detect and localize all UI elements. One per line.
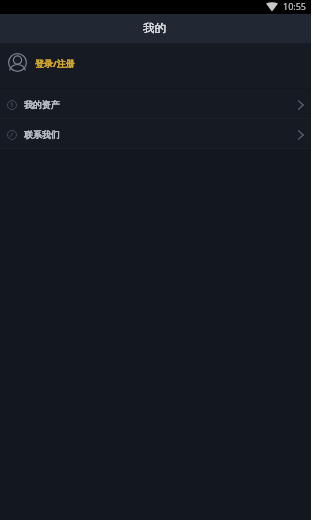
other: Contact us: [7, 130, 17, 140]
staticText: 我的资产: [24, 99, 60, 110]
staticText: 我的: [143, 21, 166, 35]
staticText: 10:55: [283, 0, 307, 12]
staticText: 我的资产: [24, 99, 60, 110]
staticText: 联系我们: [24, 129, 60, 140]
other: Open: [298, 100, 304, 110]
staticText: 登录/注册: [35, 57, 75, 69]
button[interactable]: My assets: [0, 89, 313, 119]
button[interactable]: Contact us: [0, 119, 313, 149]
other: My assets: [7, 100, 17, 110]
other: Open: [298, 130, 304, 140]
button[interactable]: Account: [0, 43, 313, 88]
staticText: 我的: [143, 21, 166, 35]
staticText: 登录/注册: [35, 57, 75, 69]
staticText: 联系我们: [24, 129, 60, 140]
other: Account: [8, 53, 27, 72]
